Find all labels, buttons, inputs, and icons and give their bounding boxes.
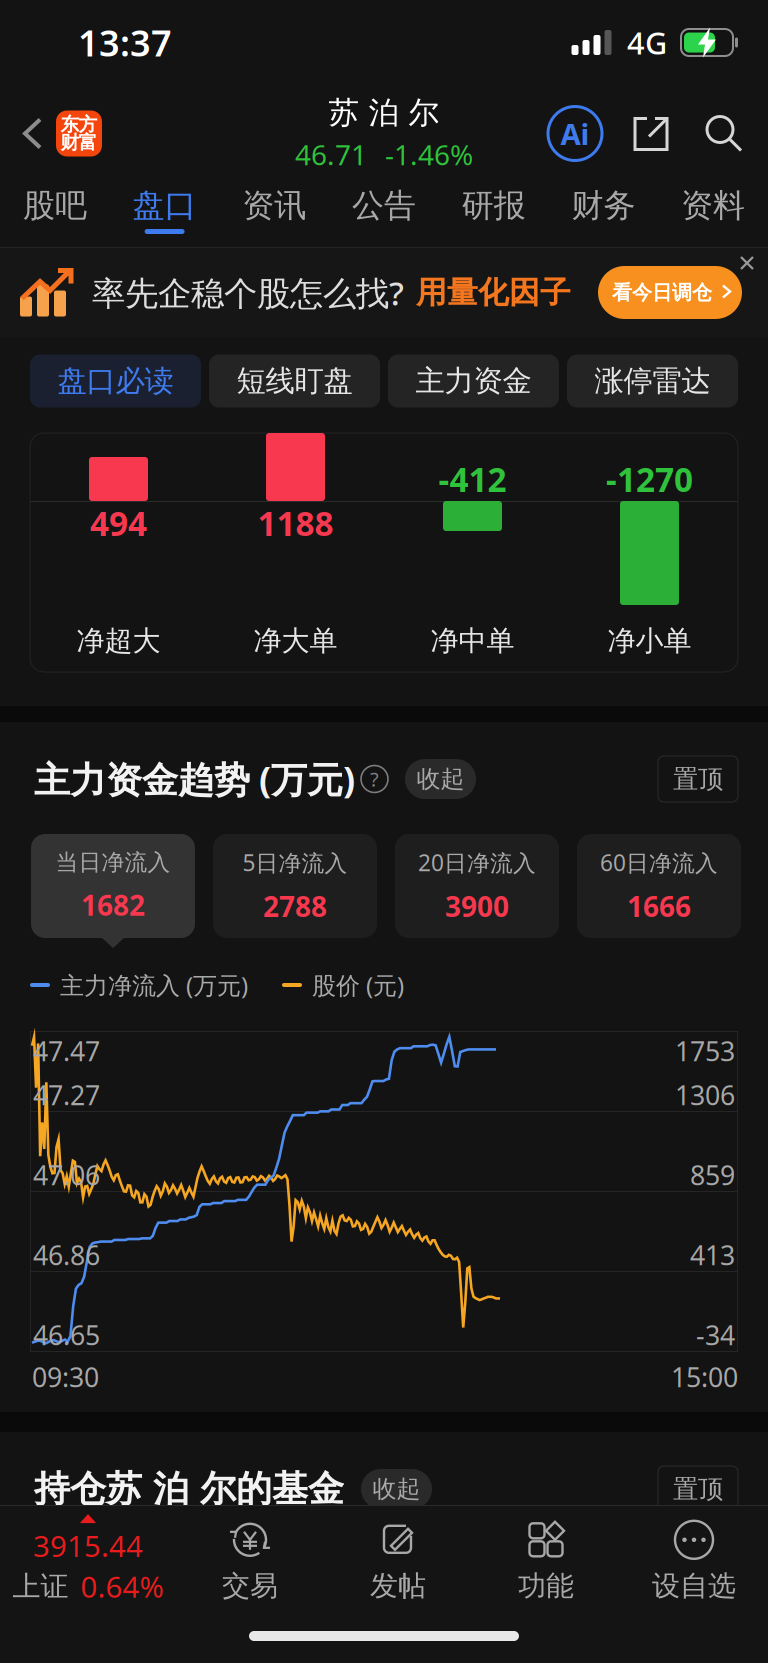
staticText: 46.65 bbox=[33, 1317, 100, 1353]
staticText: 413 bbox=[690, 1237, 735, 1273]
staticText: 5日净流入 bbox=[242, 847, 347, 877]
button[interactable]: 20日净流入 bbox=[395, 834, 559, 948]
button[interactable]: 置顶 bbox=[658, 1466, 738, 1512]
staticText: 主力净流入 (万元) bbox=[60, 969, 248, 1001]
staticText: 46.71 bbox=[295, 136, 367, 173]
staticText: 494 bbox=[90, 501, 147, 545]
staticText: 富 bbox=[78, 131, 97, 154]
button[interactable]: 盘口必读 bbox=[30, 354, 201, 407]
staticText: 置顶 bbox=[673, 1473, 723, 1504]
button[interactable]: 发帖 bbox=[324, 1506, 472, 1614]
button[interactable]: 财务 bbox=[548, 182, 658, 248]
staticText: 净小单 bbox=[607, 624, 691, 658]
staticText: 1188 bbox=[257, 501, 333, 545]
staticText: 苏 泊 尔 bbox=[328, 94, 439, 132]
staticText: 持仓苏 泊 尔的基金 bbox=[34, 1467, 344, 1511]
staticText: -34 bbox=[696, 1317, 735, 1353]
staticText: 看今日调仓 bbox=[612, 280, 712, 305]
staticText: 收起 bbox=[416, 764, 464, 794]
staticText: 公告 bbox=[352, 186, 416, 225]
staticText: 用量化因子 bbox=[416, 274, 571, 311]
button[interactable]: 60日净流入 bbox=[577, 834, 741, 948]
staticText: 15:00 bbox=[671, 1359, 738, 1395]
staticText: 13:37 bbox=[78, 19, 172, 66]
staticText: 短线盯盘 bbox=[236, 363, 352, 399]
staticText: 3900 bbox=[445, 887, 509, 925]
staticText: Ai bbox=[560, 114, 589, 153]
staticText: 主力资金趋势 (万元) bbox=[34, 755, 355, 803]
staticText: 47.06 bbox=[33, 1157, 100, 1193]
staticText: 3915.44 bbox=[33, 1526, 143, 1565]
button[interactable]: 收起 bbox=[361, 1469, 432, 1509]
button[interactable]: 关闭 bbox=[734, 250, 760, 276]
button[interactable]: 盘口 bbox=[110, 182, 219, 248]
button[interactable]: 看今日调仓 bbox=[598, 266, 742, 319]
staticText: 资讯 bbox=[242, 186, 306, 225]
button[interactable]: 涨停雷达 bbox=[567, 354, 738, 407]
staticText: 净大单 bbox=[253, 624, 337, 658]
button[interactable]: 设自选 bbox=[620, 1506, 768, 1614]
staticText: 净超大 bbox=[76, 624, 160, 658]
button[interactable]: 返回 bbox=[8, 105, 56, 161]
staticText: 盘口必读 bbox=[57, 363, 173, 399]
staticText: -1.46% bbox=[385, 136, 473, 173]
staticText: 4G bbox=[627, 22, 667, 63]
staticText: 47.27 bbox=[33, 1077, 100, 1113]
staticText: 设自选 bbox=[652, 1569, 736, 1603]
staticText: 财务 bbox=[571, 186, 635, 225]
staticText: 当日净流入 bbox=[55, 848, 170, 876]
staticText: 功能 bbox=[518, 1569, 574, 1603]
staticText: 主力资金 bbox=[415, 363, 531, 399]
staticText: 1753 bbox=[675, 1033, 735, 1069]
button[interactable]: 东方财富 bbox=[56, 110, 102, 156]
staticText: 60日净流入 bbox=[600, 847, 718, 877]
button[interactable]: 5日净流入 bbox=[213, 834, 377, 948]
staticText: ? bbox=[370, 766, 379, 792]
staticText: 发帖 bbox=[370, 1569, 426, 1603]
staticText: 收起 bbox=[372, 1474, 420, 1504]
staticText: 1306 bbox=[675, 1077, 735, 1113]
staticText: 研报 bbox=[462, 186, 526, 225]
staticText: 财 bbox=[60, 131, 79, 154]
staticText: 2788 bbox=[263, 887, 327, 925]
staticText: 股吧 bbox=[23, 186, 87, 225]
button[interactable]: 3915.44 bbox=[0, 1506, 176, 1614]
staticText: 09:30 bbox=[32, 1359, 99, 1395]
button[interactable]: 功能 bbox=[472, 1506, 620, 1614]
staticText: 股价 (元) bbox=[312, 969, 404, 1001]
staticText: 率先企稳个股怎么找? bbox=[92, 270, 404, 315]
staticText: 20日净流入 bbox=[418, 847, 536, 877]
staticText: 1666 bbox=[627, 887, 691, 925]
staticText: 置顶 bbox=[673, 763, 723, 794]
staticText: 净中单 bbox=[430, 624, 514, 658]
button[interactable]: 分享 bbox=[628, 107, 674, 159]
button[interactable]: 收起 bbox=[405, 759, 476, 799]
staticText: 859 bbox=[690, 1157, 735, 1193]
staticText: 上证 bbox=[12, 1569, 68, 1604]
staticText: -1270 bbox=[606, 457, 693, 501]
button[interactable]: 短线盯盘 bbox=[209, 354, 380, 407]
button[interactable]: 交易 bbox=[176, 1506, 324, 1614]
staticText: 47.47 bbox=[33, 1033, 100, 1069]
button[interactable]: 主力资金 bbox=[388, 354, 559, 407]
button[interactable]: 研报 bbox=[439, 182, 548, 248]
button[interactable]: 置顶 bbox=[658, 756, 738, 802]
staticText: 0.64% bbox=[80, 1567, 163, 1606]
staticText: -412 bbox=[438, 457, 506, 501]
staticText: 46.86 bbox=[33, 1237, 100, 1273]
button[interactable]: 股吧 bbox=[0, 182, 110, 248]
staticText: 方 bbox=[78, 113, 97, 136]
button[interactable]: 资讯 bbox=[219, 182, 329, 248]
staticText: 涨停雷达 bbox=[594, 363, 710, 399]
button[interactable]: 公告 bbox=[329, 182, 439, 248]
staticText: 东 bbox=[60, 113, 79, 136]
staticText: 盘口 bbox=[133, 186, 197, 225]
staticText: 交易 bbox=[222, 1569, 278, 1603]
button[interactable]: 当日净流入 bbox=[31, 834, 195, 948]
staticText: 资料 bbox=[681, 186, 745, 225]
button[interactable]: AI 助手 bbox=[548, 106, 602, 160]
button[interactable]: 搜索 bbox=[700, 107, 746, 159]
staticText: 1682 bbox=[81, 886, 145, 923]
button[interactable]: 资料 bbox=[658, 182, 768, 248]
